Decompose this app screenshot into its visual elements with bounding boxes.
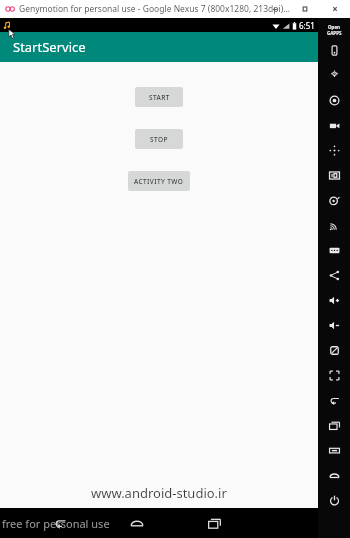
button[interactable]: Close bbox=[320, 0, 350, 18]
button[interactable]: STOP bbox=[135, 129, 183, 149]
button[interactable]: Volume down bbox=[318, 313, 350, 338]
button[interactable]: Home bbox=[120, 508, 154, 538]
button[interactable]: Volume up bbox=[318, 288, 350, 313]
button[interactable]: Power bbox=[318, 488, 350, 513]
button[interactable]: Open GAPPS bbox=[318, 22, 350, 38]
staticText: START bbox=[149, 93, 170, 102]
button[interactable]: Recent apps bbox=[318, 413, 350, 438]
staticText: Genymotion for personal use - Google Nex… bbox=[19, 3, 290, 15]
staticText: ACTIVITY TWO bbox=[134, 177, 184, 186]
button[interactable]: Back bbox=[43, 508, 77, 538]
button[interactable]: GPS bbox=[318, 63, 350, 88]
button[interactable]: Maximize bbox=[290, 0, 320, 18]
button[interactable]: Video bbox=[318, 113, 350, 138]
button[interactable]: Network bbox=[318, 213, 350, 238]
button[interactable]: Rotate bbox=[318, 338, 350, 363]
staticText: StartService bbox=[13, 38, 86, 56]
button[interactable]: SMS bbox=[318, 238, 350, 263]
button[interactable]: Home bbox=[318, 463, 350, 488]
staticText: 6:51 bbox=[299, 20, 315, 31]
staticText: Open bbox=[328, 24, 341, 30]
staticText: free for personal use bbox=[2, 516, 110, 531]
button[interactable]: Share bbox=[318, 263, 350, 288]
button[interactable]: Battery bbox=[318, 38, 350, 63]
button[interactable]: Disk IO bbox=[318, 188, 350, 213]
staticText: www.android-studio.ir bbox=[91, 484, 227, 502]
button[interactable]: Keyboard bbox=[318, 438, 350, 463]
button[interactable]: Minimize bbox=[260, 0, 290, 18]
staticText: STOP bbox=[150, 135, 168, 144]
button[interactable]: START bbox=[135, 87, 183, 107]
button[interactable]: Identifiers bbox=[318, 163, 350, 188]
button[interactable]: ACTIVITY TWO bbox=[128, 171, 190, 191]
staticText: GAPPS bbox=[327, 30, 342, 36]
button[interactable]: Fullscreen bbox=[318, 363, 350, 388]
button[interactable]: D-pad bbox=[318, 138, 350, 163]
button[interactable]: Recent apps bbox=[197, 508, 231, 538]
button[interactable]: Back bbox=[318, 388, 350, 413]
button[interactable]: Camera bbox=[318, 88, 350, 113]
